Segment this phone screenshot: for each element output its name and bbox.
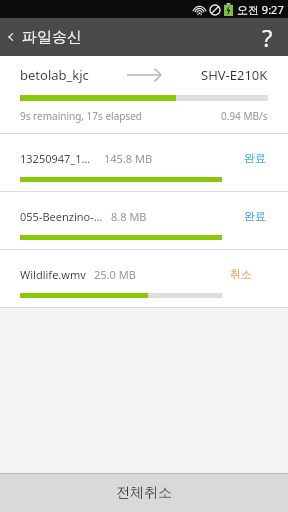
- staticText: 완료: [244, 151, 266, 165]
- button[interactable]: 전체취소: [0, 473, 288, 512]
- staticText: 전체취소: [116, 484, 172, 502]
- staticText: 055-Beenzino-Dali, Van, Picasso.mp3: [20, 209, 103, 224]
- staticText: 9s remaining, 17s elapsed: [20, 109, 221, 123]
- staticText: 8.8 MB: [111, 209, 147, 224]
- staticText: 25.0 MB: [94, 267, 136, 282]
- staticText: 0.94 MB/s: [221, 109, 268, 123]
- button[interactable]: Wildlife.wmv: [0, 250, 288, 308]
- staticText: 파일송신: [22, 28, 82, 47]
- staticText: ?: [262, 21, 273, 54]
- button[interactable]: Help: [246, 18, 288, 56]
- staticText: 취소: [230, 267, 252, 281]
- button[interactable]: 완료: [230, 145, 280, 171]
- staticText: 완료: [244, 209, 266, 223]
- staticText: 오전 9:27: [237, 2, 284, 17]
- button[interactable]: 취소: [216, 261, 266, 287]
- staticText: 13250947_17235886.enc.mp4: [20, 151, 96, 166]
- button[interactable]: 파일송신: [0, 18, 92, 56]
- staticText: SHV-E210K: [201, 66, 268, 84]
- button[interactable]: 055-Beenzino-Dali, Van, Picasso.mp3: [0, 192, 288, 250]
- button[interactable]: 완료: [230, 203, 280, 229]
- button[interactable]: 13250947_17235886.enc.mp4: [0, 134, 288, 192]
- staticText: 145.8 MB: [104, 151, 153, 166]
- staticText: betolab_kjc: [20, 66, 127, 84]
- staticText: Wildlife.wmv: [20, 267, 86, 282]
